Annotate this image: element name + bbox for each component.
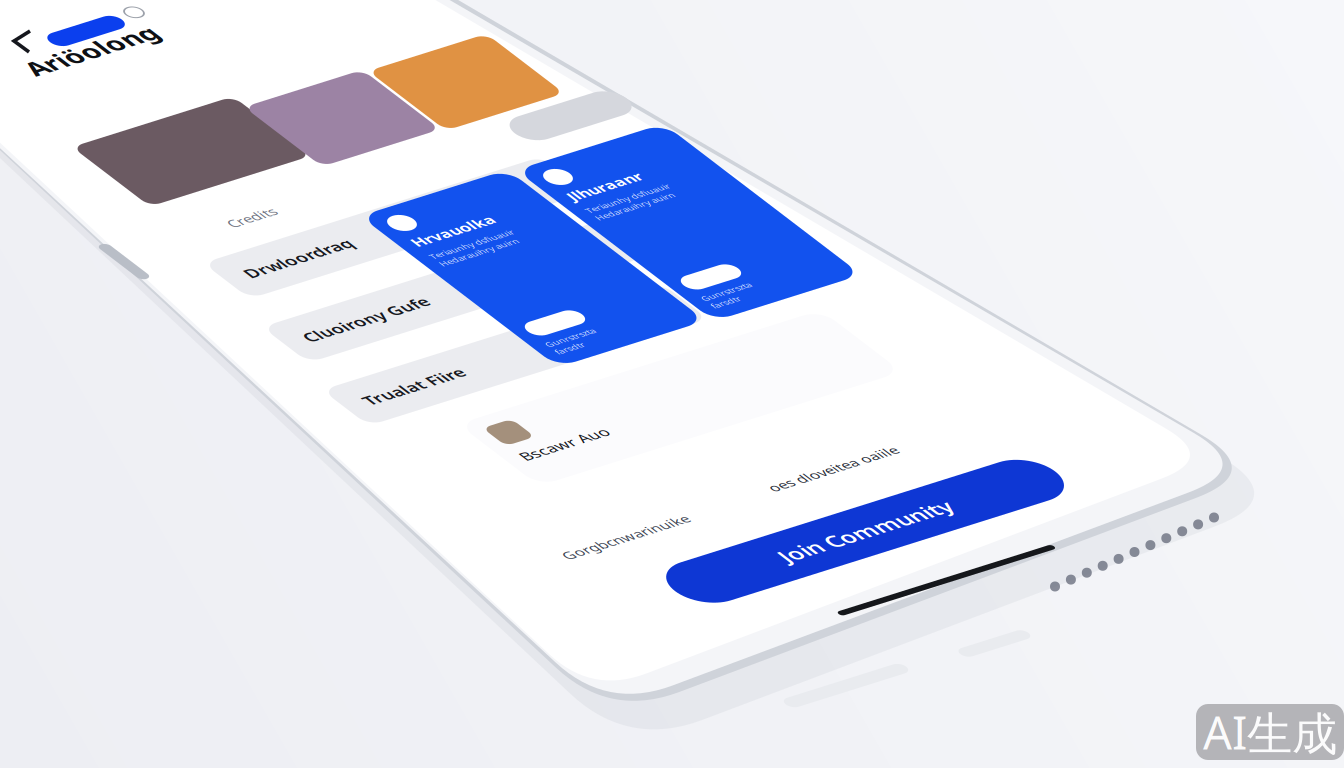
staticText: Ariöolong: [0, 0, 131, 35]
button[interactable]: Options: [0, 0, 115, 38]
button[interactable]: Trualat Fiire: [0, 0, 350, 60]
staticText: Jlhuraanr: [12, 42, 86, 63]
button[interactable]: Back: [0, 0, 1344, 768]
staticText: Gorgbcnwarinuike: [0, 0, 128, 19]
staticText: Teriaunhy dsfiuauir Hedarauihry auirn: [12, 69, 97, 94]
button[interactable]: Drwloordraq: [0, 0, 350, 60]
staticText: Bscawr Auo: [14, 53, 103, 74]
staticText: Hrvauolka: [12, 42, 95, 63]
button[interactable]: Join Community: [0, 0, 392, 64]
staticText: Join Community: [109, 17, 283, 47]
staticText: Trualat Fiire: [20, 18, 121, 41]
button[interactable]: Jlhuraanr: [0, 0, 152, 254]
staticText: Drwloordraq: [20, 18, 128, 41]
staticText: AI生成: [1203, 702, 1337, 762]
staticText: Cluoirony Gufe: [20, 18, 146, 41]
button[interactable]: Hrvauolka: [0, 0, 152, 254]
button[interactable]: Cluoirony Gufe: [0, 0, 350, 60]
staticText: Teriaunhy dsfiuauir Hedarauihry auirn: [12, 69, 97, 94]
staticText: oes dloveitea oaiile: [0, 0, 131, 19]
